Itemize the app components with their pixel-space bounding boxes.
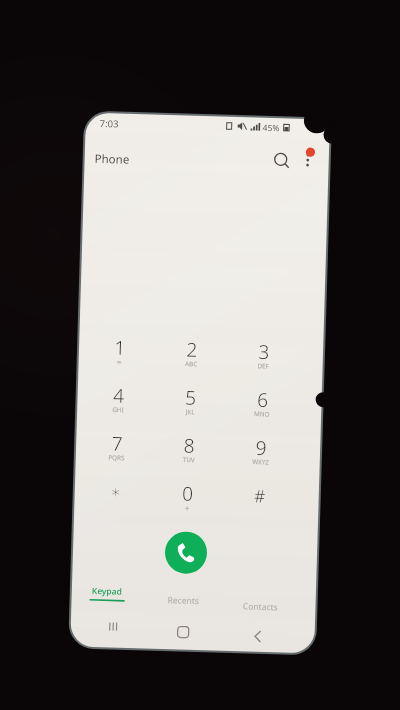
button[interactable]: Phone dialer screen — [0, 0, 400, 710]
